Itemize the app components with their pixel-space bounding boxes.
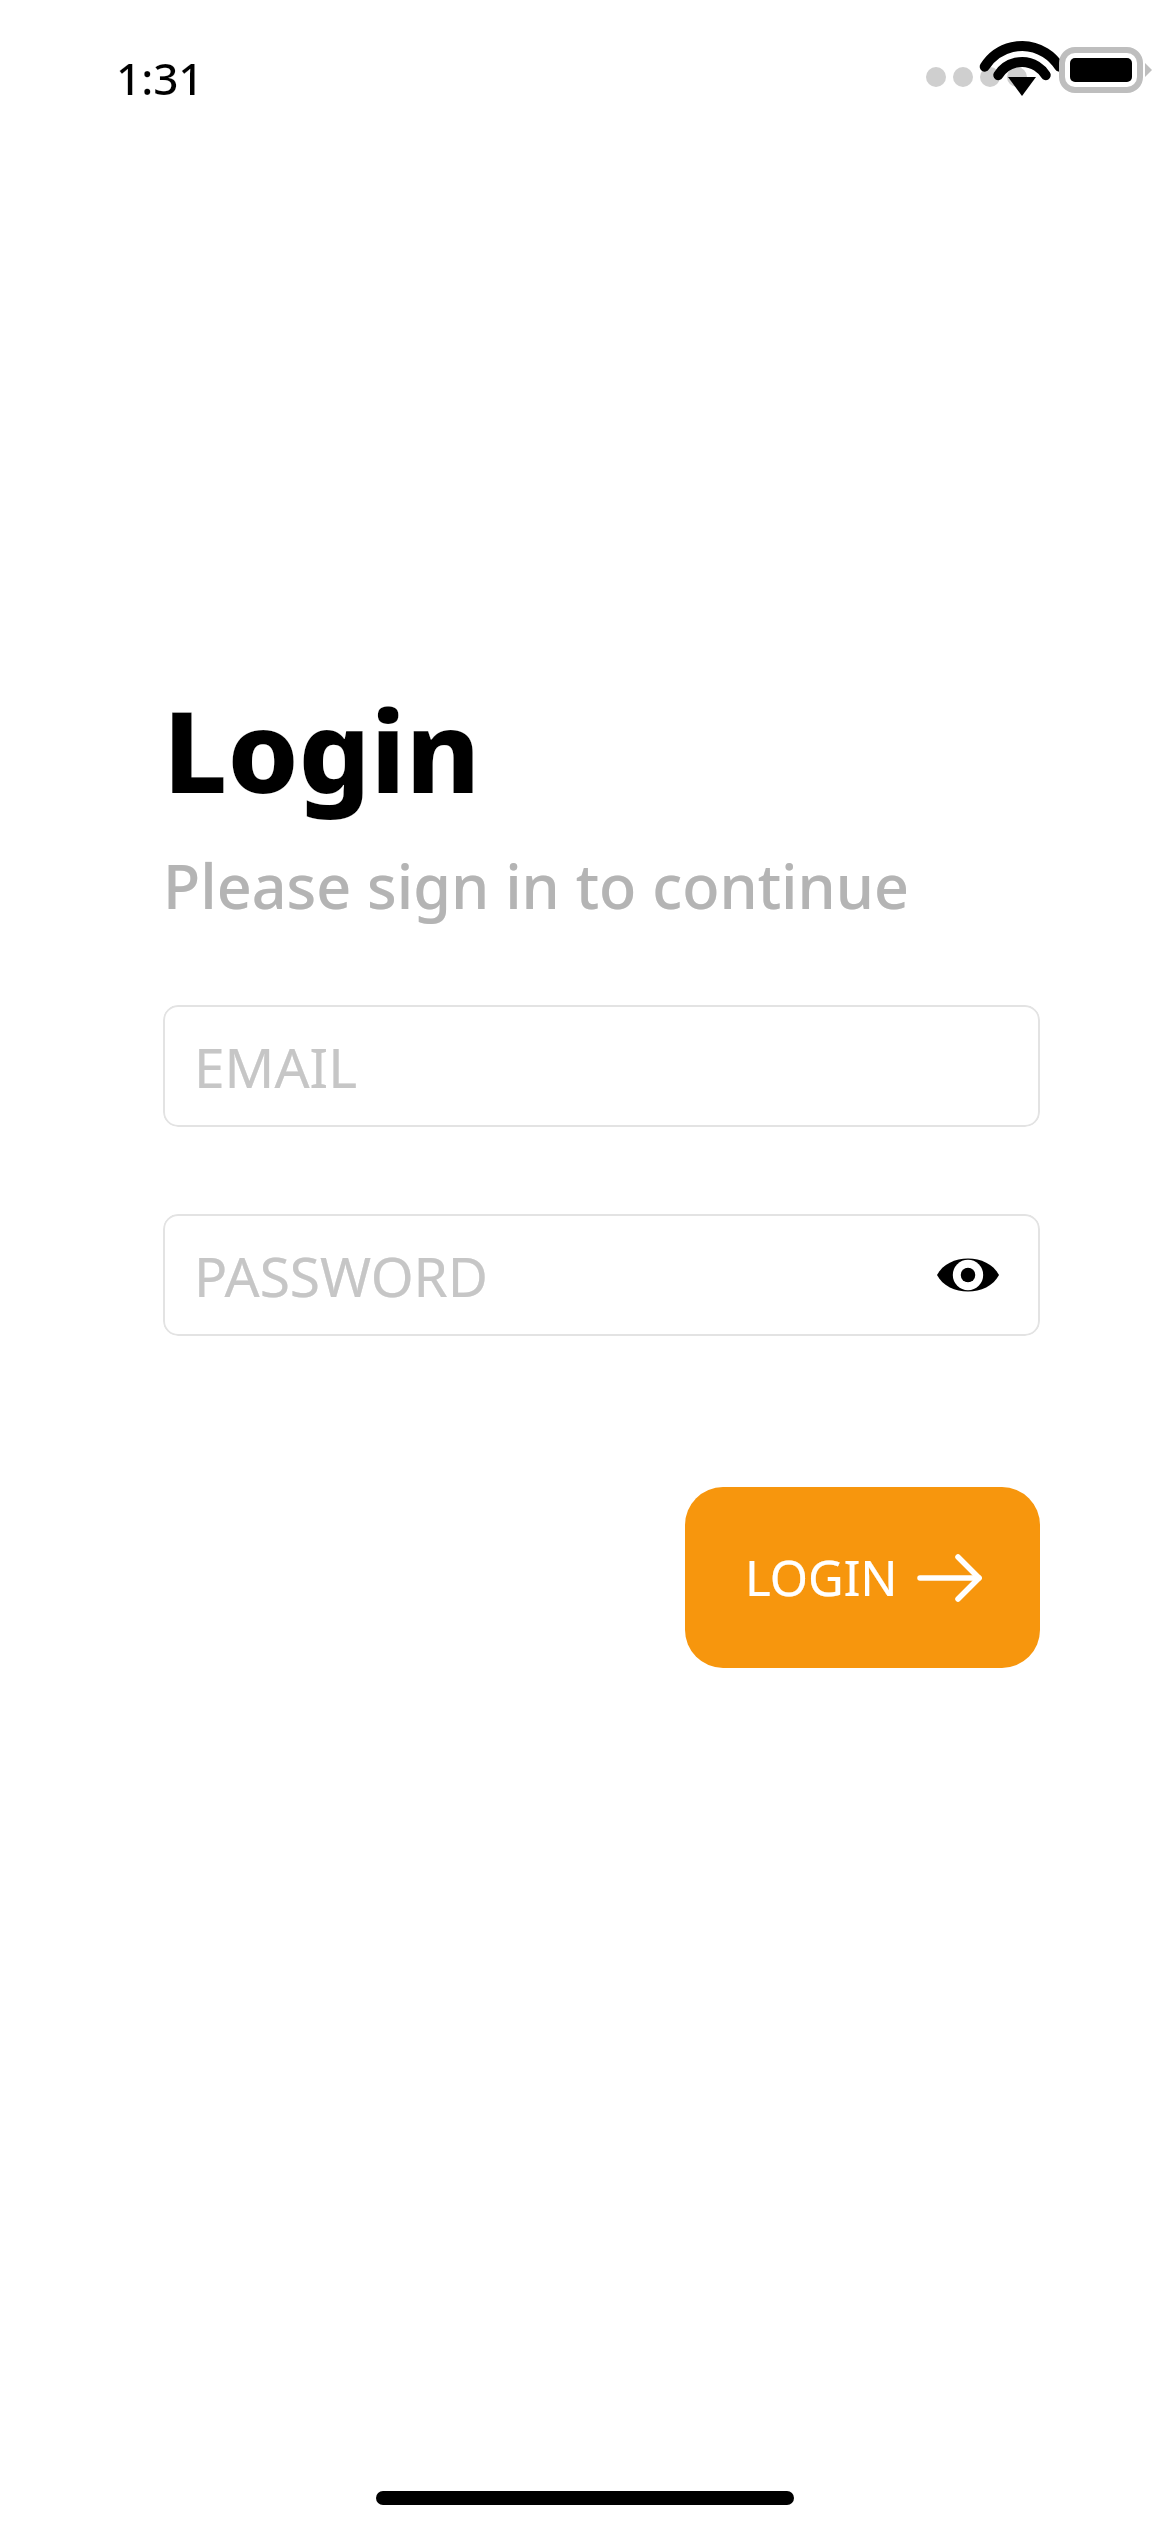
staticText: PASSWORD: [194, 1238, 488, 1313]
button[interactable]: LOGIN: [685, 1487, 1040, 1668]
staticText: Please sign in to continue: [163, 844, 910, 927]
button[interactable]: EMAIL: [163, 1005, 1040, 1127]
staticText: Login: [163, 672, 481, 826]
staticText: EMAIL: [194, 1029, 358, 1104]
button[interactable]: PASSWORD: [163, 1214, 1040, 1336]
staticText: LOGIN: [745, 1544, 898, 1611]
staticText: 1:31: [116, 48, 204, 108]
button[interactable]: Show password: [920, 1227, 1016, 1323]
